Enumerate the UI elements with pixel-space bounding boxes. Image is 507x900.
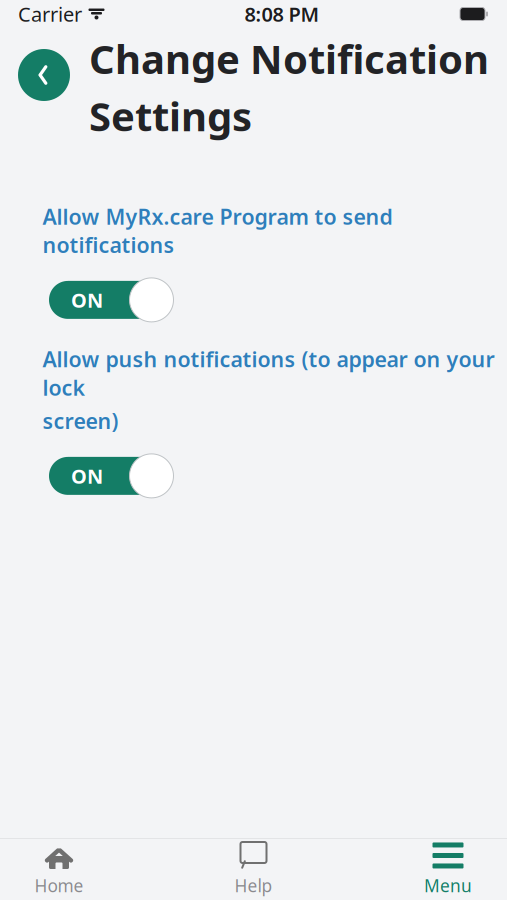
staticText: screen) xyxy=(42,407,118,435)
staticText: ON xyxy=(71,463,103,489)
staticText: 8:08 PM xyxy=(244,1,319,27)
staticText: Allow MyRx.care Program to send notifica… xyxy=(42,202,392,259)
staticText: Settings xyxy=(89,89,252,142)
staticText: Change Notification xyxy=(89,32,489,85)
button[interactable]: Help xyxy=(198,840,308,898)
button[interactable]: On xyxy=(42,277,174,323)
button[interactable]: Home xyxy=(4,840,114,898)
staticText: Home xyxy=(34,874,83,897)
staticText: Menu xyxy=(424,874,472,897)
staticText: Carrier xyxy=(18,1,82,27)
staticText: Help xyxy=(234,874,272,897)
button[interactable]: Menu xyxy=(393,840,503,898)
staticText: ON xyxy=(71,287,103,313)
button[interactable]: Back xyxy=(18,49,70,101)
staticText: Allow push notifications (to appear on y… xyxy=(42,345,494,402)
button[interactable]: On xyxy=(42,453,174,499)
